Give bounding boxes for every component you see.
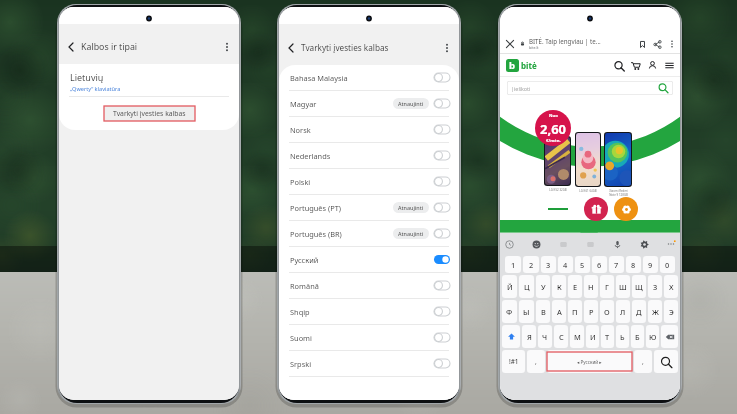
button[interactable]: Clipboard: [504, 239, 514, 249]
button[interactable]: ,: [527, 350, 545, 373]
button[interactable]: З: [648, 275, 662, 298]
button[interactable]: Ч: [538, 325, 552, 348]
button[interactable]: 9: [643, 256, 658, 273]
button[interactable]: Disabled: [434, 229, 450, 238]
button[interactable]: Д: [632, 300, 646, 323]
button[interactable]: 4: [558, 256, 573, 273]
button[interactable]: Р: [584, 300, 598, 323]
button[interactable]: Português (BR): [279, 221, 459, 246]
button[interactable]: Bahasa Malaysia: [279, 65, 459, 90]
button[interactable]: GIF: [585, 239, 595, 249]
button[interactable]: Н: [584, 275, 598, 298]
button[interactable]: Ф: [502, 300, 517, 323]
button[interactable]: Б: [631, 325, 644, 348]
button[interactable]: Ю: [646, 325, 659, 348]
button[interactable]: 8: [626, 256, 641, 273]
button[interactable]: [654, 350, 678, 373]
button[interactable]: Srpski: [279, 351, 459, 376]
button[interactable]: |ieškoti: [507, 81, 673, 95]
button[interactable]: К: [552, 275, 566, 298]
button[interactable]: More options: [666, 38, 678, 50]
button[interactable]: [502, 325, 520, 348]
button[interactable]: И: [586, 325, 599, 348]
button[interactable]: Magyar: [279, 91, 459, 116]
button[interactable]: Disabled: [434, 281, 450, 290]
button[interactable]: Disabled: [434, 359, 450, 368]
button[interactable]: В: [536, 300, 550, 323]
button[interactable]: Ь: [616, 325, 629, 348]
button[interactable]: ◂ Русский ▸: [547, 350, 632, 373]
button[interactable]: Back: [63, 39, 78, 54]
button[interactable]: Gifts: [584, 197, 608, 221]
button[interactable]: 7: [609, 256, 624, 273]
button[interactable]: Г: [600, 275, 614, 298]
button[interactable]: ,: [634, 350, 652, 373]
button[interactable]: Disabled: [434, 151, 450, 160]
button[interactable]: Back: [283, 40, 298, 55]
button[interactable]: Disabled: [434, 333, 450, 342]
button[interactable]: Disabled: [434, 177, 450, 186]
button[interactable]: Stickers: [558, 239, 568, 249]
button[interactable]: Я: [522, 325, 536, 348]
button[interactable]: Disabled: [434, 125, 450, 134]
button[interactable]: Norsk: [279, 117, 459, 142]
button[interactable]: Disabled: [434, 307, 450, 316]
button[interactable]: Atnaujinti: [393, 98, 429, 109]
button[interactable]: Close: [503, 37, 516, 50]
button[interactable]: More: [666, 239, 676, 249]
button[interactable]: Atnaujinti: [393, 228, 429, 239]
button[interactable]: Э: [664, 300, 678, 323]
button[interactable]: О: [600, 300, 614, 323]
button[interactable]: Х: [664, 275, 678, 298]
button[interactable]: !#1: [502, 350, 525, 373]
button[interactable]: Account: [646, 59, 659, 72]
button[interactable]: Share: [651, 38, 663, 50]
button[interactable]: Português (PT): [279, 195, 459, 220]
button[interactable]: Е: [568, 275, 582, 298]
button[interactable]: More options: [439, 40, 454, 55]
button[interactable]: 2: [523, 256, 539, 273]
button[interactable]: 1: [505, 256, 521, 273]
button[interactable]: 6: [592, 256, 607, 273]
button[interactable]: Ш: [616, 275, 630, 298]
button[interactable]: Disabled: [434, 203, 450, 212]
button[interactable]: Polski: [279, 169, 459, 194]
button[interactable]: Disabled: [434, 99, 450, 108]
button[interactable]: Tvarkyti įvesties kalbas: [104, 106, 195, 121]
button[interactable]: Enabled: [434, 255, 450, 264]
button[interactable]: Л: [616, 300, 630, 323]
button[interactable]: Т: [601, 325, 614, 348]
button[interactable]: П: [568, 300, 582, 323]
button[interactable]: Русский: [279, 247, 459, 272]
button[interactable]: Shqip: [279, 299, 459, 324]
staticText: 4: [563, 260, 568, 270]
button[interactable]: Lietuvių: [59, 71, 239, 93]
button[interactable]: А: [552, 300, 566, 323]
button[interactable]: М: [570, 325, 584, 348]
button[interactable]: Nederlands: [279, 143, 459, 168]
button[interactable]: [661, 325, 678, 348]
button[interactable]: Bookmark: [636, 38, 648, 50]
button[interactable]: Щ: [632, 275, 646, 298]
button[interactable]: Ц: [519, 275, 534, 298]
button[interactable]: С: [554, 325, 568, 348]
button[interactable]: Offers: [614, 197, 638, 221]
button[interactable]: More options: [219, 39, 234, 54]
button[interactable]: Emoji: [531, 239, 541, 249]
button[interactable]: Disabled: [434, 73, 450, 82]
button[interactable]: Menu: [663, 59, 676, 72]
button[interactable]: У: [536, 275, 550, 298]
button[interactable]: Atnaujinti: [393, 202, 429, 213]
button[interactable]: Ы: [519, 300, 534, 323]
button[interactable]: Română: [279, 273, 459, 298]
button[interactable]: 0: [660, 256, 675, 273]
button[interactable]: Suomi: [279, 325, 459, 350]
button[interactable]: 5: [575, 256, 590, 273]
button[interactable]: Ж: [648, 300, 662, 323]
button[interactable]: 3: [541, 256, 556, 273]
button[interactable]: Cart: [629, 59, 642, 72]
button[interactable]: Search: [612, 59, 625, 72]
button[interactable]: Й: [502, 275, 517, 298]
button[interactable]: Settings: [639, 239, 649, 249]
button[interactable]: Voice input: [612, 239, 622, 249]
